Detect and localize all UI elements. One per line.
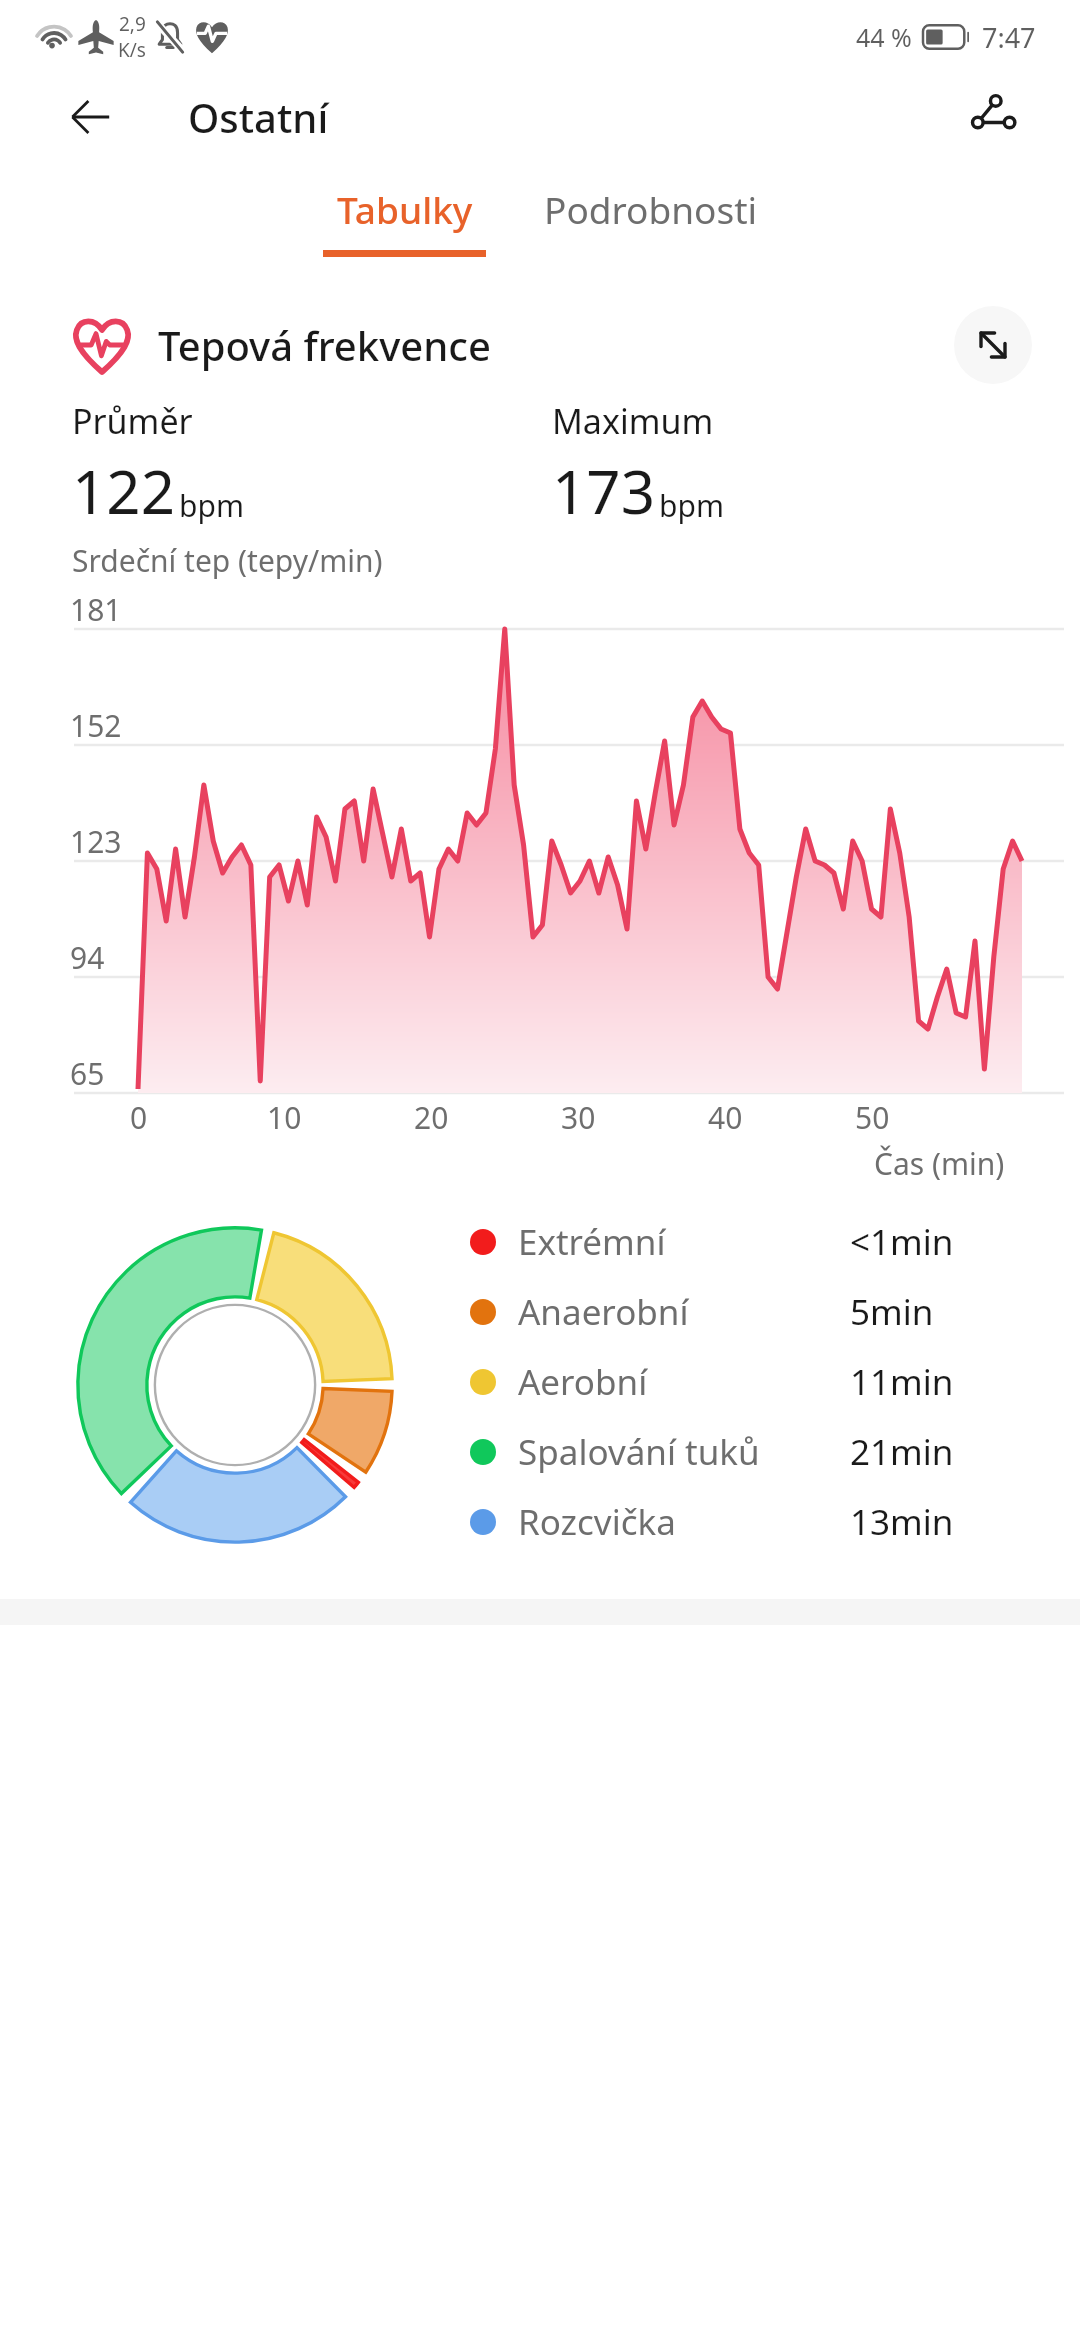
staticText: Extrémní	[518, 1218, 666, 1266]
staticText: 20	[414, 1097, 449, 1138]
staticText: Anaerobní	[518, 1288, 689, 1336]
staticText: Průměr	[72, 398, 193, 444]
staticText: 94	[70, 937, 105, 978]
staticText: 13min	[850, 1498, 954, 1546]
button[interactable]: Podrobnosti	[536, 178, 766, 263]
staticText: 173	[552, 450, 655, 532]
staticText: 44 %	[856, 20, 912, 54]
staticText: 122	[72, 450, 175, 532]
staticText: 123	[70, 821, 122, 862]
staticText: 5min	[850, 1288, 934, 1336]
staticText: K/s	[118, 37, 146, 63]
staticText: Podrobnosti	[544, 184, 758, 234]
staticText: 65	[70, 1053, 105, 1094]
staticText: 30	[561, 1097, 596, 1138]
button[interactable]: Expand	[954, 306, 1032, 384]
staticText: <1min	[850, 1218, 954, 1266]
button[interactable]: Aerobní	[470, 1347, 1040, 1417]
staticText: Spalování tuků	[518, 1428, 760, 1476]
staticText: 2,9	[119, 11, 146, 37]
staticText: 152	[70, 705, 122, 746]
staticText: bpm	[659, 485, 724, 526]
staticText: 7:47	[982, 19, 1036, 56]
button[interactable]: Anaerobní	[470, 1277, 1040, 1347]
button[interactable]: Rozcvička	[470, 1487, 1040, 1557]
staticText: 50	[855, 1097, 890, 1138]
staticText: 40	[708, 1097, 743, 1138]
button[interactable]: Spalování tuků	[470, 1417, 1040, 1487]
staticText: Tabulky	[337, 184, 473, 234]
staticText: Rozcvička	[518, 1498, 676, 1546]
staticText: Maximum	[552, 398, 714, 444]
staticText: Čas (min)	[874, 1143, 1005, 1184]
button[interactable]: Extrémní	[470, 1207, 1040, 1277]
staticText: 181	[70, 589, 122, 630]
staticText: Srdeční tep (tepy/min)	[72, 540, 383, 581]
staticText: 11min	[850, 1358, 954, 1406]
button[interactable]: Back	[58, 85, 122, 149]
staticText: 21min	[850, 1428, 954, 1476]
staticText: 10	[267, 1097, 302, 1138]
button[interactable]: Share	[956, 80, 1030, 154]
staticText: bpm	[179, 485, 244, 526]
staticText: 0	[130, 1097, 148, 1138]
staticText: Tepová frekvence	[158, 318, 491, 372]
staticText: Aerobní	[518, 1358, 648, 1406]
staticText: Ostatní	[188, 90, 329, 144]
button[interactable]: Tabulky	[315, 178, 494, 263]
